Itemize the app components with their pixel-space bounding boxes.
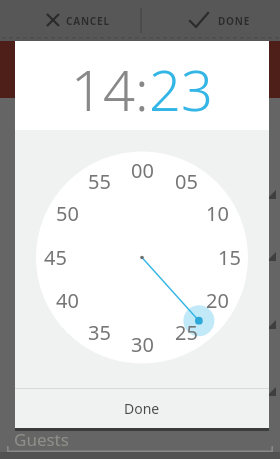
staticText: 55 xyxy=(88,168,111,192)
staticText: 23 xyxy=(149,51,213,127)
staticText: Guests xyxy=(14,428,69,451)
staticText: 05 xyxy=(175,168,198,192)
staticText: 35 xyxy=(88,319,111,343)
button[interactable]: CANCEL xyxy=(0,0,140,41)
staticText: 25 xyxy=(175,319,198,343)
staticText: 30 xyxy=(131,331,154,355)
button[interactable]: DONE xyxy=(140,0,280,41)
staticText: 00 xyxy=(131,157,154,181)
button[interactable]: Done xyxy=(15,389,269,428)
staticText: 10 xyxy=(206,200,229,224)
staticText: : xyxy=(135,51,149,127)
staticText: 14 xyxy=(71,51,135,127)
staticText: DONE xyxy=(218,14,251,28)
staticText: 15 xyxy=(218,244,241,268)
staticText: 45 xyxy=(44,244,67,268)
staticText: Done xyxy=(124,399,160,418)
staticText: 50 xyxy=(56,200,79,224)
staticText: 20 xyxy=(206,287,229,311)
staticText: CANCEL xyxy=(66,14,110,28)
staticText: 40 xyxy=(56,287,79,311)
